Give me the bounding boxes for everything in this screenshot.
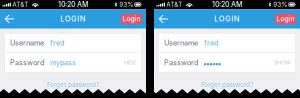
staticText: LOGIN <box>214 14 240 23</box>
staticText: Password <box>164 58 198 67</box>
staticText: 10:20 AM <box>212 0 242 9</box>
staticText: AT&T <box>12 1 28 8</box>
staticText: 10:20 AM <box>58 0 88 9</box>
button[interactable]: Back <box>154 9 173 28</box>
staticText: fred <box>204 38 218 47</box>
button[interactable]: Username <box>4 33 141 52</box>
staticText: 93% <box>119 1 133 8</box>
button[interactable]: Login <box>275 14 296 24</box>
staticText: LOGIN <box>60 14 86 23</box>
button[interactable]: Back <box>0 9 19 28</box>
staticText: Login <box>122 15 140 23</box>
staticText: HIDE <box>124 59 136 66</box>
staticText: Login <box>276 15 294 23</box>
staticText: Forget password? <box>47 81 99 88</box>
button[interactable]: Password <box>4 53 141 72</box>
staticText: Username <box>10 38 44 47</box>
staticText: SHOW <box>274 59 290 66</box>
staticText: mypass <box>50 58 76 67</box>
button[interactable]: Forget password? <box>154 79 300 90</box>
button[interactable]: Password <box>158 53 295 72</box>
staticText: AT&T <box>166 1 182 8</box>
button[interactable]: Login <box>121 14 142 24</box>
button[interactable]: Forget password? <box>0 79 146 90</box>
button[interactable]: Username <box>158 33 295 52</box>
staticText: fred <box>50 38 64 47</box>
staticText: Username <box>164 38 198 47</box>
staticText: 93% <box>273 1 287 8</box>
staticText: Password <box>10 58 44 67</box>
staticText: Forget password? <box>201 81 253 88</box>
